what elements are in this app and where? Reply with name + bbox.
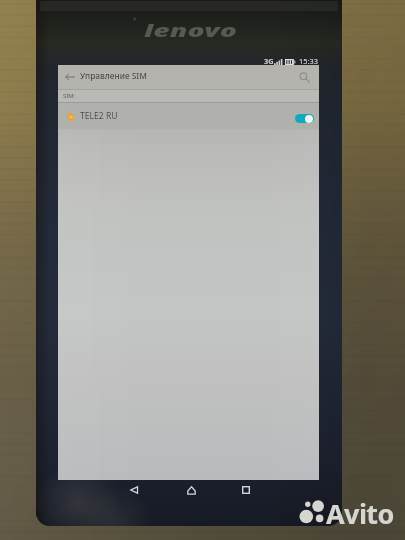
button[interactable]: Home (177, 478, 205, 502)
button[interactable]: Back (61, 65, 79, 89)
button[interactable]: Enable SIM (295, 114, 314, 123)
button[interactable]: TELE2 RU (58, 103, 319, 129)
staticText: SIM: (63, 92, 76, 100)
staticText: 3G (264, 56, 274, 66)
button[interactable]: Back (120, 478, 148, 502)
button[interactable]: Recent apps (232, 478, 260, 502)
staticText: TELE2 RU (80, 110, 118, 122)
staticText: 15:33 (299, 56, 318, 66)
staticText: Avito (326, 495, 394, 532)
staticText: Управление SIM (80, 70, 147, 81)
staticText: lenovo (144, 18, 238, 43)
button[interactable]: Search (295, 65, 313, 89)
